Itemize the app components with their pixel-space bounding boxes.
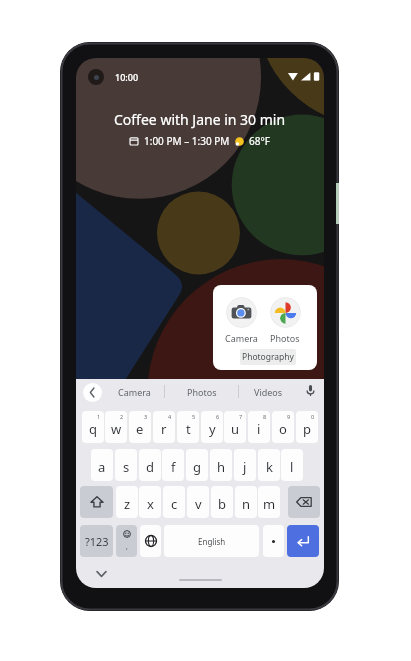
staticText: s (123, 458, 130, 476)
button[interactable]: Hide keyboard (91, 564, 111, 584)
staticText: m (263, 495, 276, 513)
button[interactable]: 7 (224, 411, 246, 443)
button[interactable]: Camera (221, 297, 261, 344)
staticText: ?123 (85, 534, 109, 549)
staticText: 3 (144, 413, 148, 420)
button[interactable]: m (258, 486, 280, 518)
staticText: g (193, 458, 201, 476)
button[interactable]: Camera (213, 285, 317, 370)
staticText: 6 (216, 413, 220, 420)
staticText: 1 (97, 413, 101, 420)
button[interactable]: Backspace (288, 486, 320, 518)
button[interactable]: 6 (201, 411, 223, 443)
staticText: h (217, 458, 226, 476)
button[interactable]: 4 (153, 411, 175, 443)
button[interactable]: v (187, 486, 209, 518)
button[interactable]: English (164, 525, 259, 557)
button[interactable]: c (163, 486, 185, 518)
staticText: t (186, 420, 191, 438)
staticText: l (290, 458, 294, 476)
button[interactable]: Back (83, 383, 102, 402)
staticText: p (303, 420, 311, 438)
staticText: c (171, 495, 178, 513)
button[interactable]: d (139, 449, 161, 481)
button[interactable]: Enter (287, 525, 319, 557)
button[interactable]: 2 (105, 411, 127, 443)
button[interactable]: j (234, 449, 256, 481)
staticText: 10:00 (115, 71, 139, 83)
button[interactable]: Period (263, 525, 284, 557)
staticText: , (126, 542, 128, 552)
button[interactable]: l (281, 449, 303, 481)
button[interactable]: x (139, 486, 161, 518)
button[interactable]: Videos (244, 379, 292, 404)
button[interactable]: b (211, 486, 233, 518)
staticText: u (231, 420, 240, 438)
button[interactable]: n (235, 486, 257, 518)
button[interactable]: g (186, 449, 208, 481)
button[interactable]: h (210, 449, 232, 481)
staticText: Videos (254, 386, 283, 398)
button[interactable]: Photos (265, 297, 305, 344)
staticText: 68°F (249, 134, 270, 148)
staticText: 0 (311, 413, 315, 420)
staticText: 2 (120, 413, 124, 420)
button[interactable]: z (116, 486, 138, 518)
staticText: Photography (242, 351, 294, 363)
button[interactable]: k (258, 449, 280, 481)
button[interactable]: Emoji (116, 525, 137, 557)
button[interactable]: 8 (248, 411, 270, 443)
staticText: d (146, 458, 154, 476)
staticText: 9 (287, 413, 291, 420)
staticText: Camera (118, 386, 151, 398)
button[interactable]: Language (140, 525, 161, 557)
staticText: 8 (263, 413, 267, 420)
staticText: English (198, 536, 226, 547)
staticText: w (111, 420, 122, 438)
button[interactable]: ?123 (80, 525, 113, 557)
staticText: v (195, 495, 202, 513)
staticText: n (242, 495, 251, 513)
staticText: Coffee with Jane in 30 min (114, 110, 286, 129)
staticText: 1:00 PM – 1:30 PM (144, 134, 230, 148)
staticText: j (243, 458, 247, 476)
staticText: Photos (187, 386, 217, 398)
button[interactable]: 1 (82, 411, 104, 443)
button[interactable]: Photos (178, 379, 226, 404)
button[interactable]: Shift (80, 486, 113, 518)
staticText: f (171, 458, 176, 476)
button[interactable]: Voice input (302, 382, 318, 398)
staticText: Camera (225, 332, 258, 344)
staticText: a (98, 458, 106, 476)
staticText: q (89, 420, 97, 438)
staticText: Photos (270, 332, 300, 344)
button[interactable]: 3 (129, 411, 151, 443)
button[interactable]: a (91, 449, 113, 481)
staticText: r (161, 420, 167, 438)
staticText: k (266, 458, 273, 476)
button[interactable]: 0 (296, 411, 318, 443)
staticText: e (136, 420, 144, 438)
button[interactable]: 9 (272, 411, 294, 443)
button[interactable]: f (162, 449, 184, 481)
staticText: 5 (192, 413, 196, 420)
staticText: o (279, 420, 287, 438)
staticText: y (209, 420, 216, 438)
button[interactable]: 5 (177, 411, 199, 443)
staticText: i (257, 420, 261, 438)
staticText: 4 (168, 413, 172, 420)
button[interactable]: s (115, 449, 137, 481)
staticText: z (124, 495, 131, 513)
button[interactable]: Camera (110, 379, 158, 404)
staticText: 7 (239, 413, 243, 420)
staticText: x (147, 495, 154, 513)
staticText: b (218, 495, 226, 513)
